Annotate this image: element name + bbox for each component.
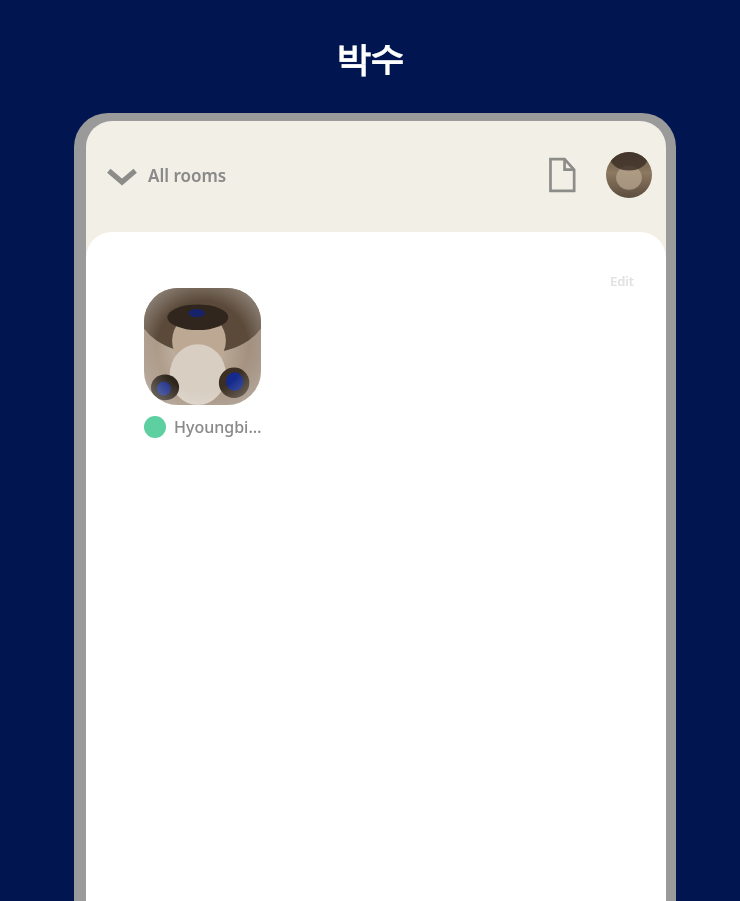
- button[interactable]: Hyoungbi…: [140, 284, 266, 442]
- staticText: 박수: [0, 38, 740, 81]
- button[interactable]: Notes: [540, 153, 584, 197]
- button[interactable]: Edit: [610, 272, 634, 290]
- button[interactable]: All rooms: [105, 160, 229, 191]
- button[interactable]: Profile: [606, 152, 652, 198]
- staticText: All rooms: [148, 164, 227, 187]
- staticText: Hyoungbi…: [174, 416, 262, 438]
- staticText: Edit: [610, 272, 634, 290]
